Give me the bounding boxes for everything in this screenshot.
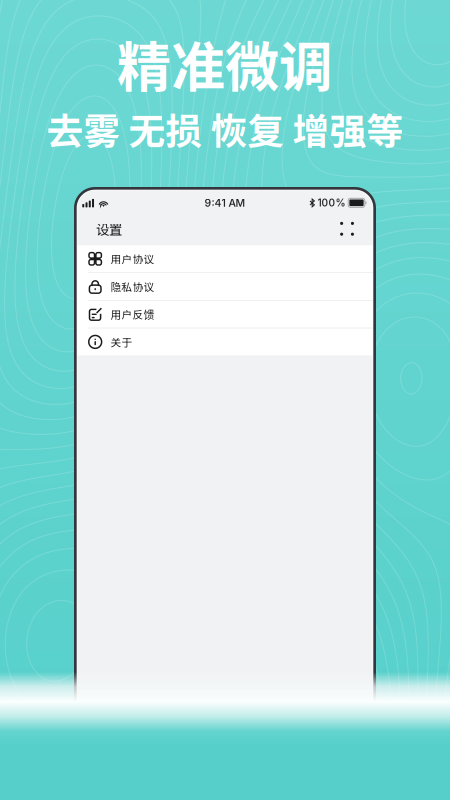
staticText: 关于 [110, 334, 132, 350]
staticText: 用户反馈 [110, 306, 154, 322]
staticText: 9:41 AM [204, 196, 245, 209]
staticText: 100% [318, 197, 346, 209]
staticText: 精准微调 [117, 24, 333, 102]
button[interactable]: 用户反馈 [74, 301, 376, 328]
staticText: 隐私协议 [110, 279, 154, 294]
button[interactable]: More options [334, 216, 360, 242]
staticText: 设置 [96, 219, 122, 238]
staticText: 去雾 无损 恢复 增强等 [46, 102, 403, 155]
button[interactable]: 隐私协议 [74, 273, 376, 300]
button[interactable]: 关于 [74, 328, 376, 355]
button[interactable]: 用户协议 [74, 245, 376, 272]
staticText: 用户协议 [110, 251, 154, 266]
